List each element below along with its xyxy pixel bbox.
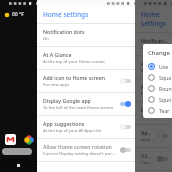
staticText: Teardrop <box>159 107 172 114</box>
staticText: At the top of your All Apps list <box>43 128 102 134</box>
button[interactable]: At A Glance <box>37 47 135 69</box>
button[interactable]: Notification dots <box>37 24 135 46</box>
staticText: Allow Home screen rotation <box>43 143 112 150</box>
button[interactable]: Add icon to Home screen <box>37 70 135 92</box>
button[interactable]: Notification dots <box>135 33 172 55</box>
staticText: Display Google app <box>141 106 154 113</box>
staticText: On <box>43 36 49 42</box>
staticText: At A Glance <box>43 51 72 58</box>
staticText: Notification dots <box>43 28 85 35</box>
staticText: Home settings <box>141 10 172 28</box>
staticText: Squircle <box>159 96 172 103</box>
staticText: Change icon shape <box>148 49 172 57</box>
staticText: On <box>141 45 147 51</box>
staticText: 60 °F <box>12 11 24 18</box>
staticText: Allow Home screen rotation <box>141 152 154 159</box>
staticText: Notification dots <box>141 37 168 44</box>
staticText: Current Display setting doesn't permit r… <box>43 151 117 157</box>
button[interactable]: Toggle <box>157 156 168 162</box>
staticText: Use system default <box>159 63 172 70</box>
button[interactable]: Allow Home screen rotation <box>135 148 172 170</box>
button[interactable]: Toggle <box>120 78 131 84</box>
button[interactable]: Square <box>148 72 172 83</box>
button[interactable]: Add icon to Home screen <box>135 79 172 101</box>
button[interactable]: Toggle <box>157 133 168 139</box>
staticText: Square <box>159 74 172 81</box>
button[interactable]: Toggle <box>120 147 131 153</box>
button[interactable]: Squircle <box>148 94 172 105</box>
button[interactable]: Toggle <box>120 101 131 107</box>
staticText: At the top of your Home screen <box>141 68 168 74</box>
staticText: For new apps <box>43 82 70 88</box>
staticText: Display Google app <box>43 97 91 104</box>
button[interactable]: Toggle <box>120 124 131 130</box>
button[interactable]: At A Glance <box>135 56 172 78</box>
staticText: App suggestions <box>141 129 154 136</box>
staticText: To the left of the main Home screen <box>141 114 154 120</box>
button[interactable]: Teardrop <box>148 105 172 116</box>
button[interactable]: Allow Home screen rotation <box>37 139 135 161</box>
staticText: Current Display setting doesn't permit r… <box>141 160 154 166</box>
button[interactable]: Rounded square <box>148 83 172 94</box>
staticText: Rounded square <box>159 85 172 92</box>
button[interactable]: Display Google app <box>37 93 135 115</box>
staticText: At A Glance <box>141 60 168 67</box>
staticText: To the left of the main Home screen <box>43 105 114 111</box>
button[interactable]: Use system default <box>148 61 172 72</box>
staticText: Home settings <box>43 10 89 19</box>
button[interactable]: Search <box>2 148 32 155</box>
staticText: At the top of your All Apps list <box>141 137 154 143</box>
button[interactable]: Photos <box>23 134 34 145</box>
button[interactable]: App suggestions <box>135 125 172 147</box>
staticText: For new apps <box>141 91 154 97</box>
button[interactable]: Toggle <box>157 110 168 116</box>
staticText: At the top of your Home screen <box>43 59 105 65</box>
staticText: App suggestions <box>43 120 85 127</box>
button[interactable]: Gmail <box>5 134 16 145</box>
button[interactable]: Toggle <box>157 87 168 93</box>
staticText: Add icon to Home screen <box>43 74 106 81</box>
button[interactable]: Display Google app <box>135 102 172 124</box>
staticText: Add icon to Home screen <box>141 83 154 90</box>
button[interactable]: App suggestions <box>37 116 135 138</box>
